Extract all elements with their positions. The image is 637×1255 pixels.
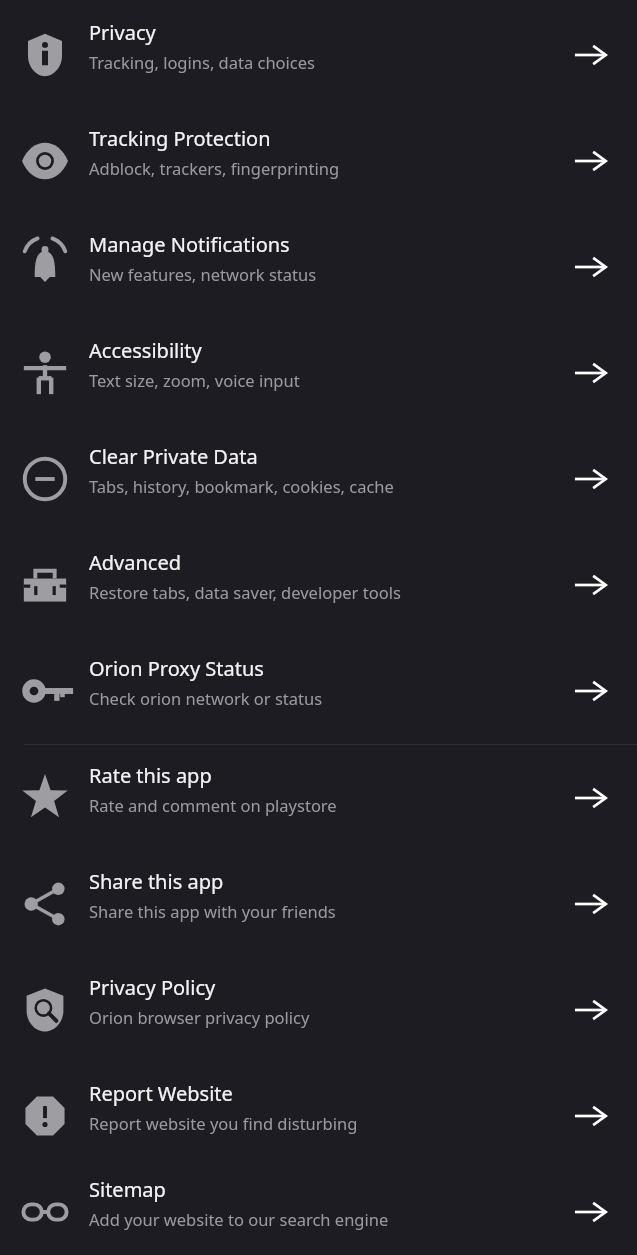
other: Open Advanced [545, 532, 637, 638]
staticText: New features, network status [89, 263, 317, 285]
button[interactable]: Orion Proxy Status [0, 638, 637, 744]
staticText: Orion browser privacy policy [89, 1006, 310, 1028]
staticText: Share this app [89, 868, 224, 895]
staticText: Advanced [89, 549, 181, 576]
staticText: Sitemap [89, 1176, 166, 1203]
staticText: Restore tabs, data saver, developer tool… [89, 581, 401, 603]
button[interactable]: Rate this app [0, 745, 637, 851]
staticText: Tracking Protection [89, 125, 271, 152]
other: Open Privacy Policy [545, 957, 637, 1063]
button[interactable]: Manage Notifications [0, 214, 637, 320]
button[interactable]: Advanced [0, 532, 637, 638]
other: Open Manage Notifications [545, 214, 637, 320]
button[interactable]: Clear Private Data [0, 426, 637, 532]
other: Open Sitemap [545, 1169, 637, 1255]
other: Open Accessibility [545, 320, 637, 426]
staticText: Adblock, trackers, fingerprinting [89, 157, 340, 179]
staticText: Tabs, history, bookmark, cookies, cache [89, 475, 394, 497]
staticText: Manage Notifications [89, 231, 290, 258]
other: Open Share this app [545, 851, 637, 957]
staticText: Add your website to our search engine [89, 1208, 389, 1230]
other: Open Privacy [545, 2, 637, 108]
other: Open Orion Proxy Status [545, 638, 637, 744]
button[interactable]: Privacy Policy [0, 957, 637, 1063]
staticText: Rate and comment on playstore [89, 794, 337, 816]
staticText: Clear Private Data [89, 443, 258, 470]
staticText: Check orion network or status [89, 687, 323, 709]
staticText: Privacy [89, 19, 156, 46]
button[interactable]: Privacy [0, 2, 637, 108]
button[interactable]: Report Website [0, 1063, 637, 1169]
button[interactable]: Tracking Protection [0, 108, 637, 214]
staticText: Orion Proxy Status [89, 655, 264, 682]
staticText: Privacy Policy [89, 974, 216, 1001]
button[interactable]: Accessibility [0, 320, 637, 426]
other: Open Report Website [545, 1063, 637, 1169]
staticText: Rate this app [89, 762, 212, 789]
staticText: Report website you find disturbing [89, 1112, 358, 1134]
staticText: Tracking, logins, data choices [89, 51, 315, 73]
button[interactable]: Share this app [0, 851, 637, 957]
staticText: Accessibility [89, 337, 202, 364]
staticText: Share this app with your friends [89, 900, 336, 922]
other: Open Rate this app [545, 745, 637, 851]
button[interactable]: Sitemap [0, 1169, 637, 1255]
staticText: Text size, zoom, voice input [89, 369, 300, 391]
other: Open Tracking Protection [545, 108, 637, 214]
staticText: Report Website [89, 1080, 233, 1107]
other: Open Clear Private Data [545, 426, 637, 532]
